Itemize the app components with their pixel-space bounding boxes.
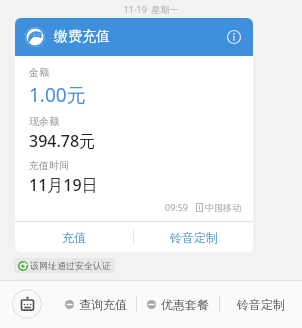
staticText: 1.00元 bbox=[29, 82, 86, 108]
button[interactable]: 查询充值 bbox=[55, 280, 136, 328]
button[interactable]: 缴费充值 bbox=[15, 18, 253, 56]
button[interactable]: 铃音定制 bbox=[220, 280, 302, 328]
staticText: 09:59 bbox=[165, 201, 189, 213]
staticText: 缴费充值 bbox=[54, 28, 110, 46]
staticText: 充值时间 bbox=[29, 159, 69, 172]
staticText: 铃音定制 bbox=[170, 230, 218, 245]
button[interactable]: 信息 bbox=[225, 28, 243, 46]
staticText: 充值 bbox=[62, 230, 86, 245]
button[interactable]: 充值 bbox=[15, 222, 133, 252]
staticText: 优惠套餐 bbox=[161, 297, 209, 312]
staticText: 中国移动 bbox=[205, 202, 241, 213]
button[interactable]: 优惠套餐 bbox=[137, 280, 219, 328]
button[interactable]: 该网址通过安全认证 bbox=[14, 258, 115, 273]
staticText: 该网址通过安全认证 bbox=[30, 260, 111, 271]
staticText: 394.78元 bbox=[29, 130, 96, 152]
staticText: 金额 bbox=[29, 66, 49, 79]
button[interactable]: 金额 bbox=[15, 56, 253, 221]
staticText: 11-19 星期一 bbox=[123, 3, 179, 15]
staticText: 查询充值 bbox=[79, 297, 127, 312]
staticText: 现余额 bbox=[29, 115, 59, 128]
button[interactable]: 智能助手 bbox=[12, 289, 42, 319]
staticText: 铃音定制 bbox=[237, 297, 285, 312]
staticText: 11月19日 bbox=[29, 174, 98, 196]
button[interactable]: 铃音定制 bbox=[134, 222, 253, 252]
